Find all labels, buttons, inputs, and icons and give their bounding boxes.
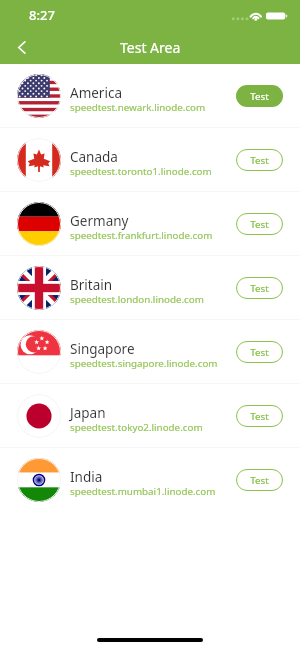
button[interactable]: Test <box>236 213 283 235</box>
staticText: Test <box>250 410 269 423</box>
staticText: Test Area <box>120 38 181 57</box>
staticText: Test <box>250 90 269 103</box>
button[interactable]: Back <box>0 28 40 64</box>
staticText: speedtest.frankfurt.linode.com <box>70 229 213 242</box>
staticText: Test <box>250 154 269 167</box>
staticText: speedtest.toronto1.linode.com <box>70 165 212 178</box>
button[interactable]: Test <box>236 469 283 491</box>
staticText: speedtest.singapore.linode.com <box>70 357 218 370</box>
staticText: Germany <box>70 212 129 230</box>
staticText: America <box>70 84 122 102</box>
staticText: speedtest.newark.linode.com <box>70 101 206 114</box>
staticText: speedtest.mumbai1.linode.com <box>70 485 216 498</box>
staticText: Test <box>250 474 269 487</box>
staticText: Singapore <box>70 340 135 358</box>
staticText: 8:27 <box>29 6 55 24</box>
button[interactable]: Britain <box>0 256 300 319</box>
button[interactable]: Test <box>236 405 283 427</box>
staticText: Test <box>250 346 269 359</box>
button[interactable]: Test <box>236 85 283 107</box>
staticText: Canada <box>70 148 118 166</box>
button[interactable]: Test <box>236 341 283 363</box>
staticText: Test <box>250 282 269 295</box>
button[interactable]: Japan <box>0 384 300 447</box>
staticText: Japan <box>70 404 106 422</box>
staticText: Test <box>250 218 269 231</box>
staticText: speedtest.tokyo2.linode.com <box>70 421 203 434</box>
button[interactable]: America <box>0 64 300 127</box>
button[interactable]: Singapore <box>0 320 300 383</box>
button[interactable]: Test <box>236 149 283 171</box>
staticText: India <box>70 468 103 486</box>
button[interactable]: Germany <box>0 192 300 255</box>
staticText: Britain <box>70 276 113 294</box>
button[interactable]: Canada <box>0 128 300 191</box>
staticText: speedtest.london.linode.com <box>70 293 204 306</box>
button[interactable]: Test <box>236 277 283 299</box>
button[interactable]: India <box>0 448 300 511</box>
